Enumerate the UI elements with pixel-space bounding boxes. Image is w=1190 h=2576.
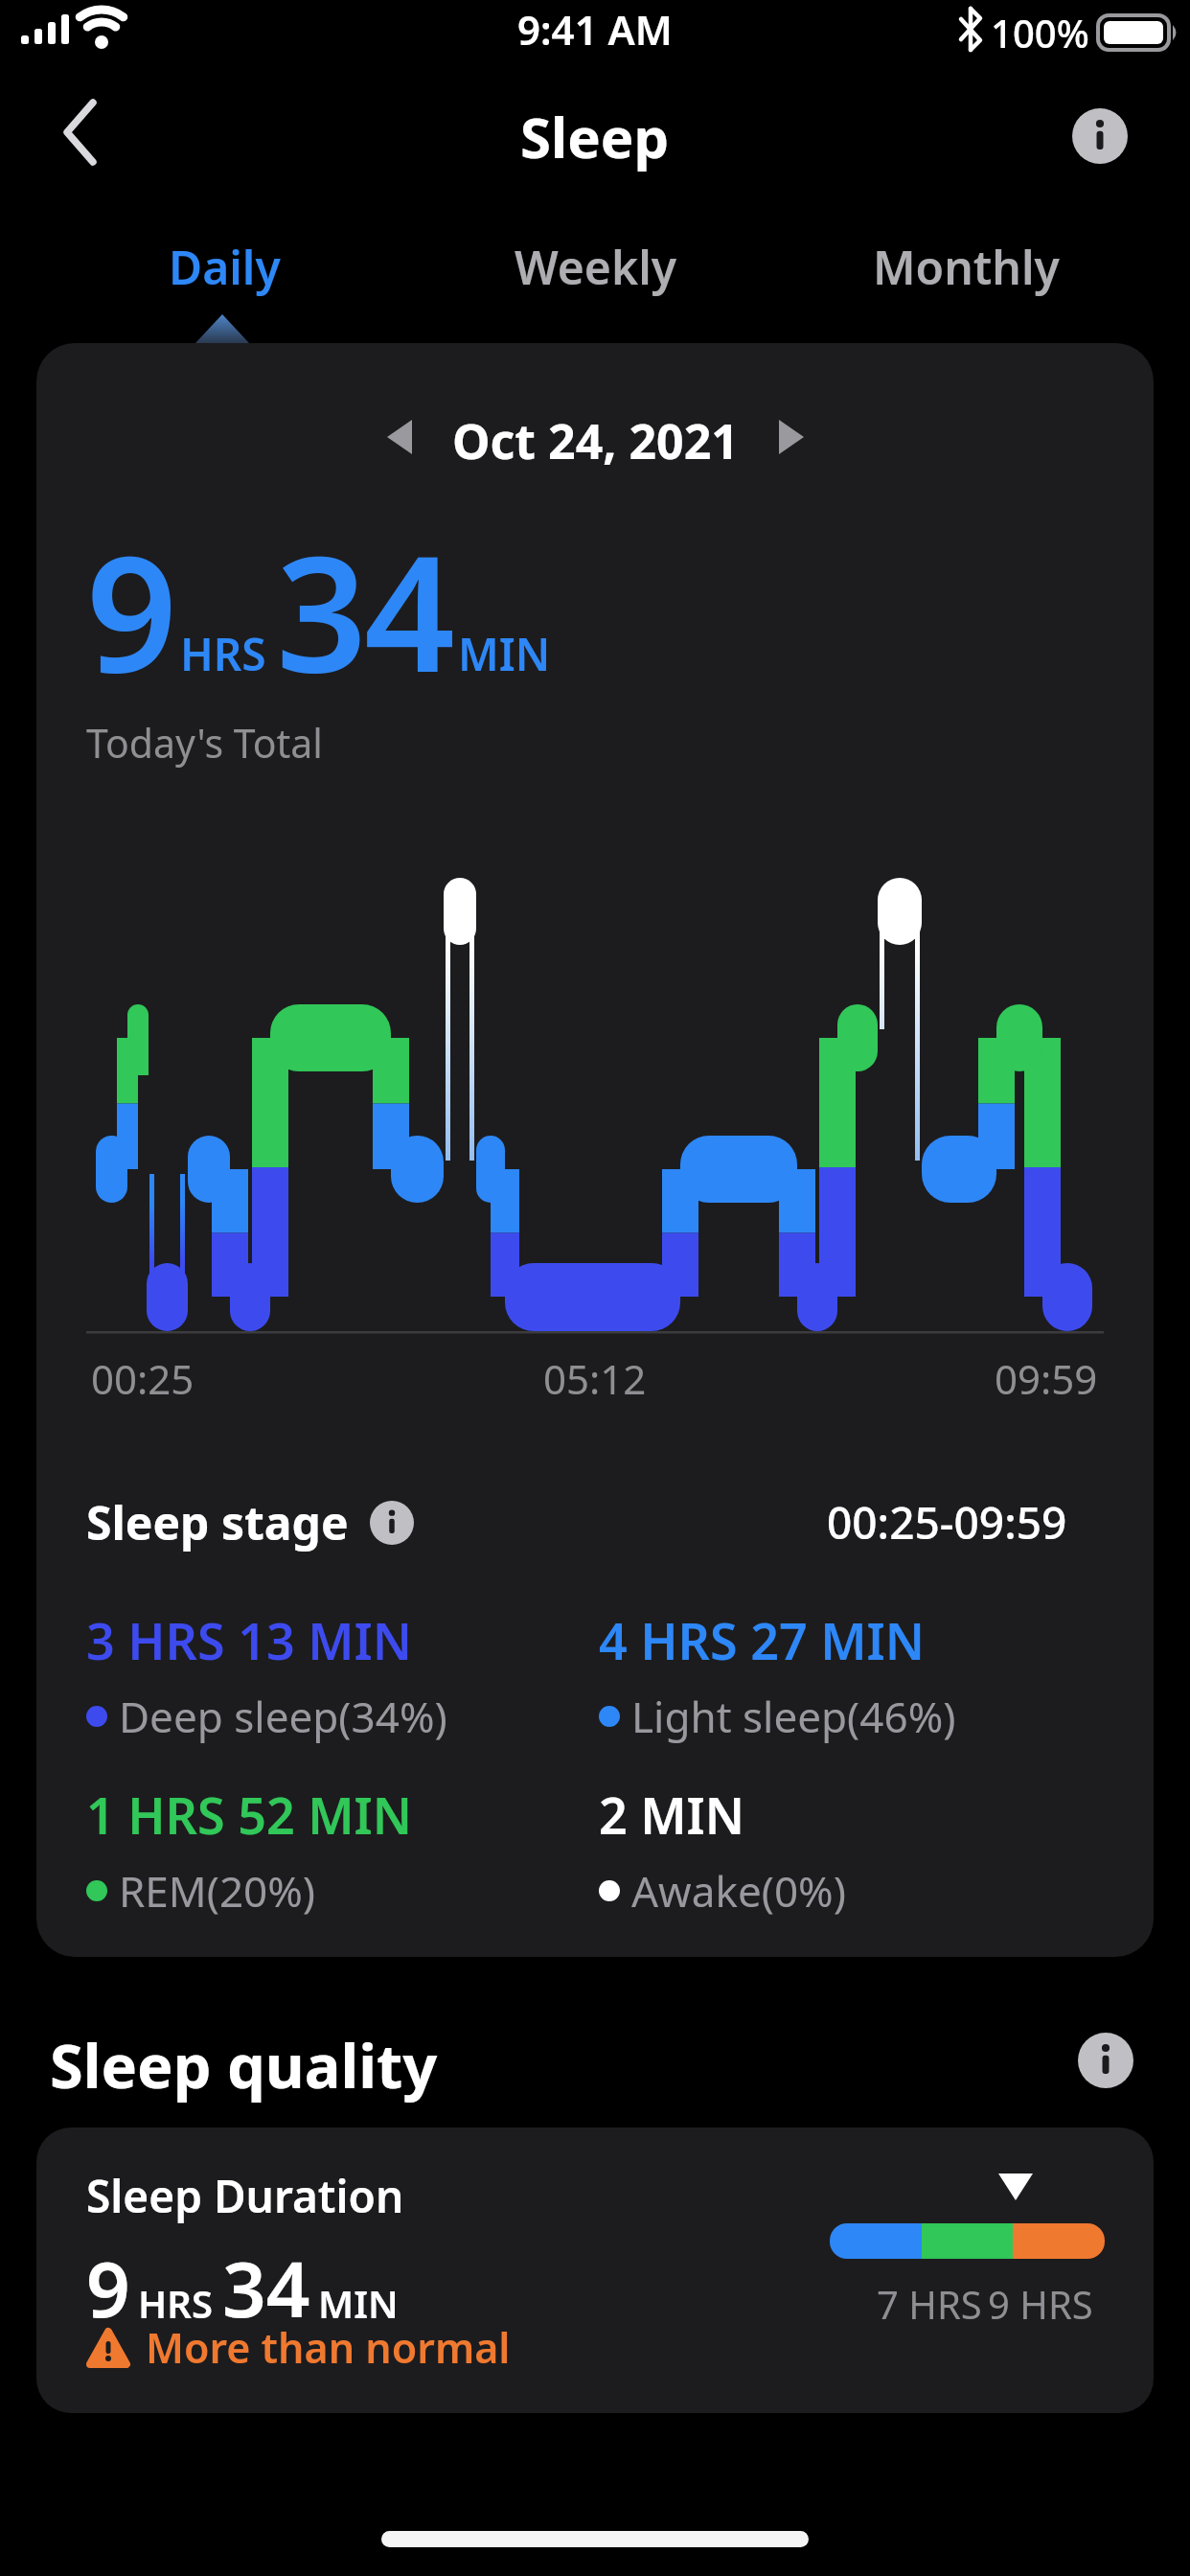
button[interactable] [1078, 2033, 1133, 2088]
staticText: HRS [138, 2277, 213, 2329]
staticText: Oct 24, 2021 [452, 408, 739, 466]
staticText: REM(20%) [119, 1862, 316, 1920]
staticText: 3 HRS 13 MIN [86, 1606, 412, 1674]
staticText: 9 [86, 2235, 130, 2339]
staticText: 2 MIN [599, 1781, 745, 1849]
button[interactable]: Monthly [781, 230, 1152, 303]
staticText: Awake(0%) [631, 1862, 846, 1920]
staticText: 09:59 [995, 1351, 1098, 1406]
staticText: 9 [86, 502, 174, 719]
staticText: MIN [318, 2277, 399, 2329]
staticText: 7 HRS [877, 2278, 982, 2330]
staticText: MIN [458, 624, 551, 684]
staticText: Sleep stage [86, 1491, 349, 1553]
staticText: Deep sleep(34%) [119, 1688, 447, 1745]
button[interactable]: 2 MIN [599, 1781, 846, 1920]
staticText: 4 HRS 27 MIN [599, 1606, 925, 1674]
staticText: 100% [991, 7, 1089, 58]
staticText: 00:25 [91, 1351, 195, 1406]
staticText: Monthly [873, 236, 1060, 298]
button[interactable] [57, 96, 105, 169]
button[interactable]: Weekly [410, 230, 781, 303]
button[interactable]: 1 HRS 52 MIN [86, 1781, 412, 1920]
staticText: Weekly [515, 236, 677, 298]
staticText: 1 HRS 52 MIN [86, 1781, 412, 1849]
staticText: Daily [169, 236, 281, 298]
staticText: More than normal [146, 2319, 511, 2376]
staticText: Sleep Duration [86, 2166, 404, 2226]
staticText: Sleep [520, 99, 670, 174]
staticText: 34 [222, 2235, 310, 2339]
staticText: 00:25-09:59 [827, 1492, 1067, 1552]
button[interactable]: Oct 24, 2021 [36, 408, 1154, 466]
staticText: 9 HRS [988, 2278, 1093, 2330]
staticText: Today's Total [86, 716, 323, 770]
staticText: 05:12 [543, 1351, 647, 1406]
staticText: Light sleep(46%) [631, 1688, 956, 1745]
button[interactable]: Daily [38, 230, 410, 303]
staticText: Sleep quality [50, 2024, 438, 2106]
staticText: 34 [276, 502, 452, 719]
button[interactable]: 3 HRS 13 MIN [86, 1606, 447, 1745]
button[interactable] [370, 1501, 414, 1545]
button[interactable]: Sleep Duration [36, 2127, 1154, 2413]
staticText: HRS [180, 624, 266, 684]
button[interactable]: 4 HRS 27 MIN [599, 1606, 956, 1745]
button[interactable] [1072, 108, 1128, 164]
staticText: 9:41 AM [517, 2, 673, 57]
